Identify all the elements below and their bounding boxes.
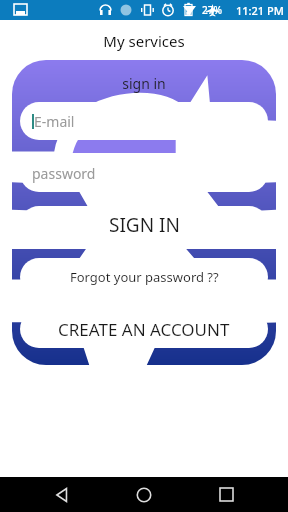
button[interactable]: E-mail bbox=[20, 102, 268, 140]
button[interactable]: password bbox=[20, 154, 268, 192]
staticText: Forgot your password ?? bbox=[70, 268, 219, 286]
staticText: My services bbox=[0, 31, 288, 51]
button[interactable]: Home bbox=[124, 477, 164, 512]
staticText: password bbox=[32, 164, 96, 183]
button[interactable]: CREATE AN ACCOUNT bbox=[20, 310, 268, 348]
staticText: SIGN IN bbox=[109, 212, 180, 238]
button[interactable]: Back bbox=[42, 477, 82, 512]
staticText: 11:21 PM bbox=[236, 3, 284, 18]
button[interactable]: Recent apps bbox=[206, 477, 246, 512]
button[interactable]: Forgot your password ?? bbox=[20, 258, 268, 296]
staticText: CREATE AN ACCOUNT bbox=[58, 318, 230, 341]
staticText: 27% bbox=[202, 3, 222, 17]
button[interactable]: SIGN IN bbox=[20, 206, 268, 244]
staticText: E-mail bbox=[34, 112, 75, 131]
staticText: sign in bbox=[12, 74, 276, 93]
